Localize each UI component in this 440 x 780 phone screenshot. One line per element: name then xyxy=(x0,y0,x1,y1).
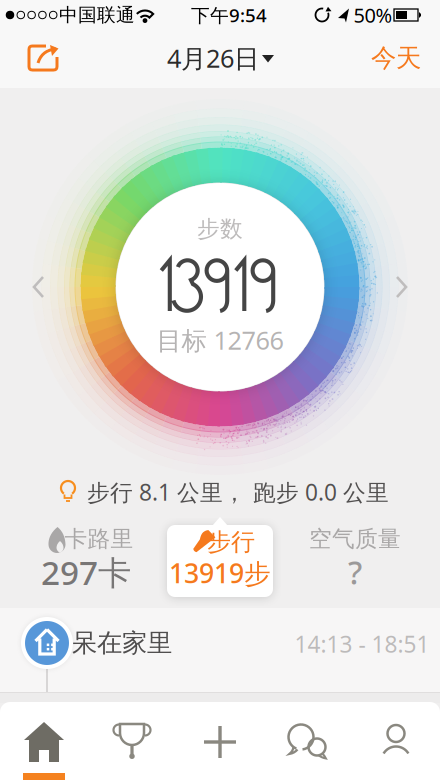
button[interactable]: 呆在家里 14:13 - 18:51 xyxy=(0,0,440,780)
staticText: 50% xyxy=(353,2,392,28)
button[interactable]: 今天 xyxy=(0,0,440,780)
button[interactable]: Home xyxy=(0,0,440,780)
staticText: 步行 xyxy=(207,527,255,557)
staticText: 13919步 xyxy=(169,555,271,591)
staticText: 呆在家里 xyxy=(72,627,172,658)
button[interactable]: Leaderboard xyxy=(0,0,440,780)
staticText: 卡路里 xyxy=(64,525,133,553)
button[interactable]: Choose date xyxy=(0,0,440,780)
staticText: ? xyxy=(348,551,362,593)
button[interactable]: Next day xyxy=(0,0,440,780)
staticText: 297卡 xyxy=(41,550,131,594)
button[interactable]: Share xyxy=(0,0,440,780)
staticText: 4月26日 xyxy=(167,41,259,75)
staticText: 下午9:54 xyxy=(191,3,267,27)
staticText: 目标 12766 xyxy=(156,323,283,357)
button[interactable]: Profile xyxy=(0,0,440,780)
button[interactable]: 步行 13919步 xyxy=(0,0,440,780)
button[interactable]: Previous day xyxy=(0,0,440,780)
button[interactable]: Add xyxy=(0,0,440,780)
staticText: 中国联通 xyxy=(59,3,135,26)
staticText: 步行 8.1 公里， 跑步 0.0 公里 xyxy=(87,477,389,507)
staticText: 空气质量 xyxy=(309,525,401,553)
staticText: 14:13 - 18:51 xyxy=(294,629,429,659)
staticText: 今天 xyxy=(371,42,421,73)
staticText: 步数 xyxy=(197,215,243,243)
button[interactable]: Messages xyxy=(0,0,440,780)
